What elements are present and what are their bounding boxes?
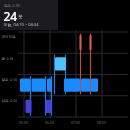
button[interactable]: Sleep stages chart <box>0 0 130 130</box>
button[interactable]: Sleep hypnogram details <box>0 0 130 130</box>
